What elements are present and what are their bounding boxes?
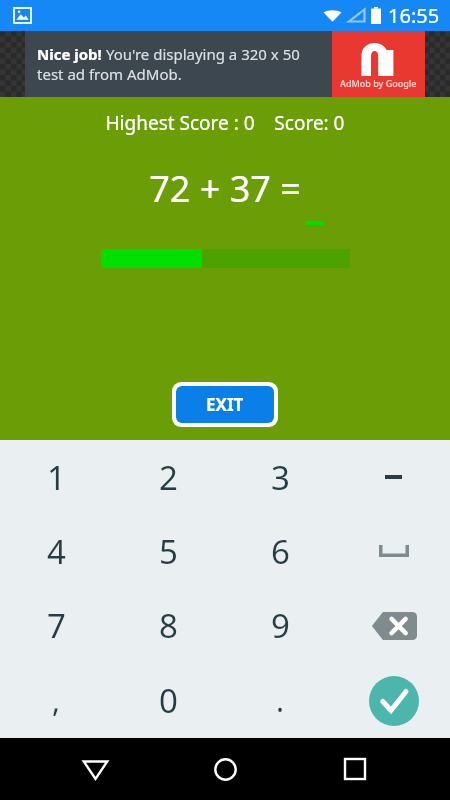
button[interactable]: 4	[0, 514, 112, 588]
staticText: 72 + 37 =	[0, 164, 450, 213]
button[interactable]: 6	[224, 514, 337, 588]
staticText: 4	[47, 529, 66, 574]
staticText: You're displaying a 320 x 50	[102, 44, 300, 64]
staticText: Highest Score : 0 Score: 0	[0, 110, 450, 136]
button[interactable]: 3	[224, 440, 337, 514]
staticText: AdMob by Google	[340, 77, 417, 89]
button[interactable]: 2	[112, 440, 224, 514]
button[interactable]: 7	[0, 588, 112, 663]
button[interactable]: EXIT	[176, 386, 274, 423]
button[interactable]: 8	[112, 588, 224, 663]
staticText: 5	[159, 529, 178, 574]
button[interactable]: Home	[190, 738, 260, 800]
button[interactable]: Backspace	[337, 588, 450, 663]
staticText: .	[276, 680, 285, 721]
button[interactable]: .	[224, 663, 337, 738]
button[interactable]: Recent apps	[320, 738, 390, 800]
button[interactable]: Back	[60, 738, 130, 800]
staticText: EXIT	[206, 393, 244, 416]
button[interactable]: Enter	[337, 663, 450, 738]
staticText: 2	[159, 455, 178, 500]
button[interactable]: 0	[112, 663, 224, 738]
staticText: 8	[159, 603, 178, 648]
button[interactable]: Nice job!	[0, 31, 450, 97]
staticText: 16:55	[388, 2, 440, 29]
staticText: 7	[47, 603, 66, 648]
button[interactable]: 5	[112, 514, 224, 588]
staticText: 3	[271, 455, 290, 500]
staticText: 1	[47, 455, 66, 500]
staticText: test ad from AdMob.	[37, 64, 182, 84]
staticText: 0	[159, 678, 178, 723]
staticText: 6	[271, 529, 290, 574]
button[interactable]: 1	[0, 440, 112, 514]
button[interactable]: Space	[337, 514, 450, 588]
button[interactable]: 9	[224, 588, 337, 663]
staticText: ,	[52, 680, 61, 721]
button[interactable]: ,	[0, 663, 112, 738]
staticText: 9	[271, 603, 290, 648]
button[interactable]: Minus	[337, 440, 450, 514]
staticText: Nice job!	[37, 44, 102, 64]
